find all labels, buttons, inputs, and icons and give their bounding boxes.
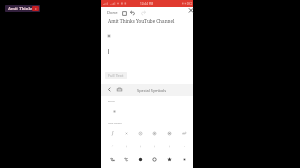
button[interactable]: Symbol xyxy=(105,153,119,166)
button[interactable]: Redo xyxy=(139,9,148,18)
button[interactable]: Full Text xyxy=(105,72,127,79)
button[interactable]: Undo xyxy=(128,9,137,18)
staticText: Special Symbols xyxy=(137,88,167,93)
button[interactable]: Symbol xyxy=(162,153,177,166)
button[interactable]: Done xyxy=(106,9,119,17)
button[interactable]: Symbol xyxy=(162,127,177,140)
staticText: Full Text xyxy=(108,73,124,78)
staticText: Amit Thinks YouTube Channel xyxy=(108,18,175,24)
staticText: Done xyxy=(107,10,118,16)
staticText: Recent xyxy=(108,100,115,103)
button[interactable]: Symbol xyxy=(105,127,119,140)
button[interactable]: Close xyxy=(186,7,196,17)
button[interactable]: Back xyxy=(105,85,114,94)
button[interactable]: Symbol xyxy=(133,153,147,166)
button[interactable]: Keyboard xyxy=(115,85,124,94)
button[interactable]: Symbol xyxy=(177,127,192,140)
button[interactable]: Symbol xyxy=(147,153,162,166)
button[interactable]: Symbol xyxy=(119,153,133,166)
button[interactable]: Note style xyxy=(120,9,129,18)
button[interactable] xyxy=(110,107,118,115)
staticText: Amit Thinks xyxy=(8,6,33,11)
button[interactable]: Symbol xyxy=(119,127,133,140)
button[interactable]: Symbol xyxy=(133,127,147,140)
button[interactable]: Symbol xyxy=(147,127,162,140)
staticText: More symbols xyxy=(108,122,122,125)
staticText: 12:44 PM xyxy=(140,2,154,6)
button[interactable]: Symbol xyxy=(177,153,192,166)
